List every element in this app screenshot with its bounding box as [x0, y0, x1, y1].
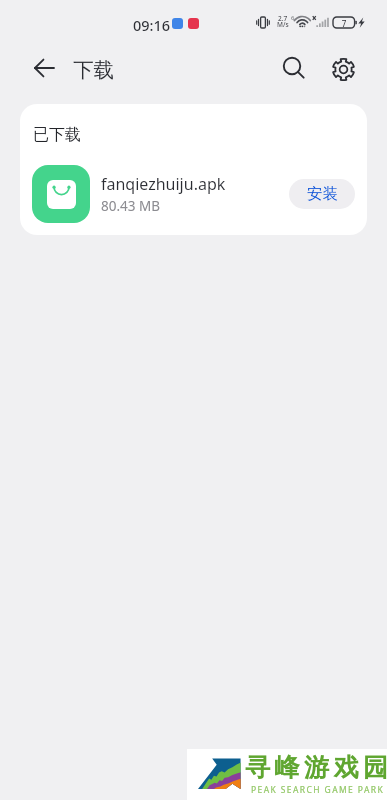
button[interactable]: Search [280, 54, 308, 82]
staticText: 下载 [73, 57, 114, 83]
staticText: M/s [277, 20, 289, 29]
staticText: 寻峰游戏园 [245, 752, 387, 783]
button[interactable]: fanqiezhuiju.apk [20, 154, 367, 235]
staticText: 09:16 [133, 15, 171, 35]
button[interactable]: 安装 [289, 179, 355, 209]
staticText: 7 [340, 18, 348, 29]
button[interactable]: Back [31, 55, 57, 81]
staticText: 安装 [307, 184, 338, 204]
staticText: 6 [291, 14, 295, 22]
staticText: PEAK SEARCH GAME PARK [251, 784, 385, 796]
staticText: 80.43 MB [101, 197, 161, 215]
staticText: 已下载 [33, 125, 81, 145]
button[interactable]: Settings [329, 55, 357, 83]
staticText: fanqiezhuiju.apk [101, 173, 226, 195]
staticText: 2.7 [278, 14, 288, 23]
